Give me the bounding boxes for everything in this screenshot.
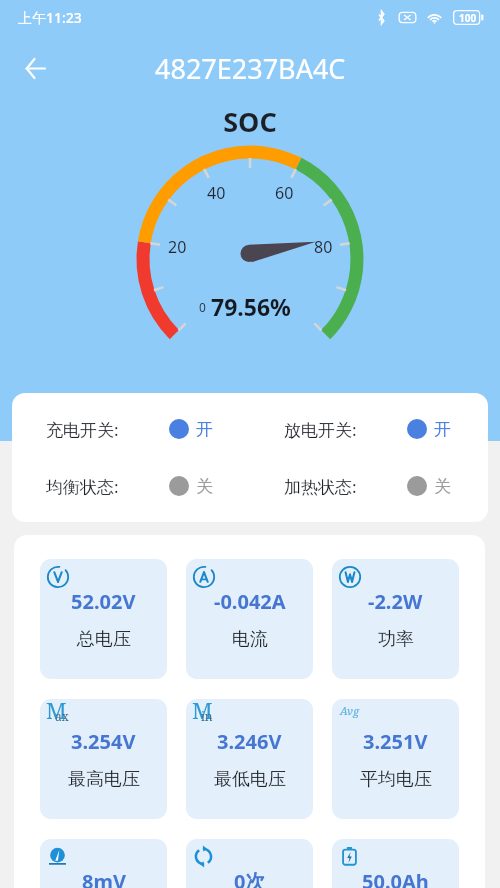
button[interactable]: 均衡状态: — [12, 473, 250, 499]
button[interactable]: -0.042A — [186, 559, 313, 679]
staticText: 功率 — [378, 628, 414, 651]
staticText: 开 — [196, 419, 213, 440]
staticText: 开 — [434, 419, 451, 440]
button[interactable]: 充电开关: — [12, 416, 250, 442]
staticText: 最低电压 — [214, 768, 286, 791]
button[interactable]: 放电开关: — [250, 416, 488, 442]
button[interactable]: M — [186, 699, 313, 819]
staticText: 8mV — [82, 868, 126, 888]
staticText: 关 — [196, 476, 213, 497]
button[interactable]: Back — [15, 48, 55, 88]
staticText: 3.251V — [363, 728, 428, 755]
button[interactable]: -2.2W — [332, 559, 459, 679]
button[interactable]: Avg — [332, 699, 459, 819]
staticText: 40 — [207, 182, 226, 204]
staticText: 关 — [434, 476, 451, 497]
button[interactable]: 52.02V — [40, 559, 167, 679]
staticText: 最高电压 — [68, 768, 140, 791]
staticText: Avg — [340, 703, 360, 718]
staticText: 平均电压 — [360, 768, 432, 791]
staticText: 4827E237BA4C — [155, 50, 346, 87]
staticText: 加热状态: — [284, 475, 357, 498]
staticText: 80 — [314, 236, 333, 258]
staticText: 放电开关: — [284, 418, 357, 441]
staticText: 充电开关: — [46, 418, 119, 441]
staticText: 0 — [199, 299, 206, 315]
staticText: 3.246V — [217, 728, 282, 755]
staticText: 60 — [275, 182, 294, 204]
button[interactable]: M — [40, 699, 167, 819]
staticText: ax — [55, 708, 69, 724]
staticText: 0次 — [234, 868, 266, 888]
staticText: 电流 — [232, 628, 268, 651]
staticText: in — [201, 708, 213, 724]
staticText: SOC — [0, 103, 500, 140]
staticText: 52.02V — [71, 588, 136, 615]
staticText: 50.0Ah — [362, 868, 429, 888]
staticText: 100 — [459, 11, 477, 25]
button[interactable]: 0次 — [186, 839, 313, 888]
staticText: 79.56% — [211, 291, 291, 322]
staticText: 上午11:23 — [18, 8, 82, 27]
staticText: -2.2W — [368, 588, 423, 615]
button[interactable]: 8mV — [40, 839, 167, 888]
button[interactable]: 50.0Ah — [332, 839, 459, 888]
staticText: -0.042A — [214, 588, 286, 615]
staticText: 3.254V — [71, 728, 136, 755]
staticText: M — [46, 699, 67, 723]
staticText: 总电压 — [77, 628, 131, 651]
staticText: M — [192, 699, 213, 723]
button[interactable]: 加热状态: — [250, 473, 488, 499]
staticText: 均衡状态: — [46, 475, 119, 498]
staticText: 20 — [168, 236, 187, 258]
